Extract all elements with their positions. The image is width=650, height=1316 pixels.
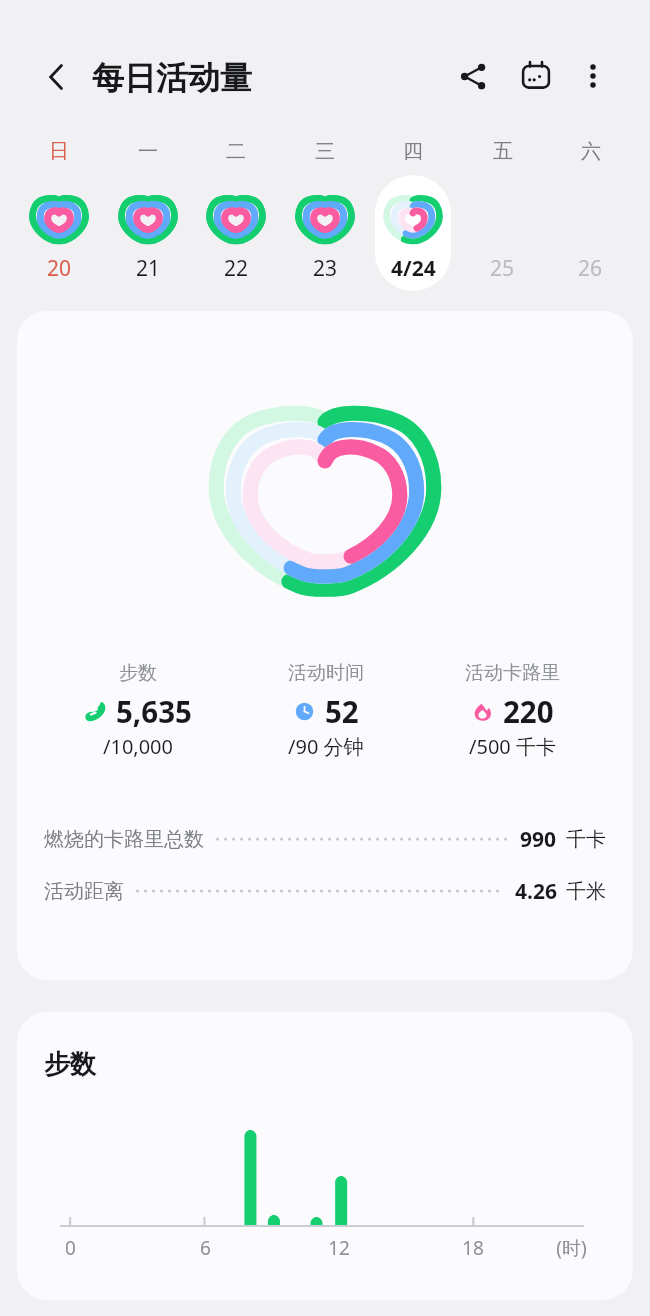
button[interactable]: 步数 — [44, 661, 232, 760]
button[interactable]: 日 — [15, 137, 103, 287]
staticText: 220 — [503, 691, 554, 731]
button[interactable]: More options — [565, 48, 621, 104]
staticText: /90 分钟 — [288, 733, 364, 760]
staticText: /500 千卡 — [469, 733, 556, 760]
staticText: 18 — [462, 1235, 484, 1261]
staticText: 千卡 — [566, 827, 606, 852]
staticText: 990 — [520, 825, 557, 854]
staticText: 步数 — [119, 661, 157, 685]
staticText: 四 — [403, 139, 423, 164]
staticText: 4/24 — [391, 254, 436, 283]
staticText: 20 — [47, 254, 72, 283]
staticText: 五 — [493, 139, 513, 164]
staticText: 21 — [136, 254, 161, 283]
button[interactable]: 四 — [369, 137, 457, 287]
button[interactable]: 活动时间 — [232, 661, 419, 760]
staticText: 二 — [226, 139, 246, 164]
button[interactable]: Back — [29, 49, 85, 105]
staticText: 12 — [328, 1235, 350, 1261]
staticText: 26 — [578, 254, 603, 283]
staticText: 22 — [224, 254, 249, 283]
staticText: 一 — [138, 139, 158, 164]
staticText: 三 — [315, 139, 335, 164]
staticText: 每日活动量 — [92, 58, 252, 98]
staticText: 5,635 — [116, 691, 192, 731]
staticText: 活动时间 — [288, 661, 364, 685]
staticText: 0 — [65, 1235, 76, 1261]
button[interactable]: 一 — [104, 137, 192, 287]
staticText: 日 — [49, 139, 69, 164]
staticText: (时) — [556, 1235, 587, 1261]
staticText: 步数 — [44, 1048, 96, 1081]
staticText: 千米 — [566, 879, 606, 904]
button[interactable]: 三 — [281, 137, 369, 287]
staticText: 52 — [325, 691, 359, 731]
button[interactable]: Calendar — [508, 47, 564, 103]
button[interactable]: Share — [445, 48, 501, 104]
staticText: 6 — [200, 1235, 211, 1261]
button[interactable]: 燃烧的卡路里总数 — [44, 824, 606, 854]
button[interactable]: 六 — [546, 137, 634, 287]
button[interactable]: 五 — [458, 137, 546, 287]
button[interactable]: 二 — [192, 137, 280, 287]
staticText: 25 — [490, 254, 515, 283]
staticText: /10,000 — [103, 733, 173, 760]
staticText: 活动距离 — [44, 879, 124, 904]
staticText: 23 — [313, 254, 338, 283]
staticText: 4.26 — [515, 877, 557, 906]
staticText: 六 — [581, 139, 601, 164]
staticText: 燃烧的卡路里总数 — [44, 827, 204, 852]
button[interactable]: 活动卡路里 — [419, 661, 606, 760]
button[interactable]: 活动距离 — [44, 876, 606, 906]
staticText: 活动卡路里 — [465, 661, 560, 685]
